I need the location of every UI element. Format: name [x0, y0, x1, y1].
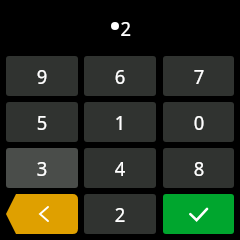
staticText: 1 [114, 109, 125, 136]
button[interactable]: 1 [84, 102, 156, 142]
staticText: 0 [193, 109, 204, 136]
button[interactable]: 6 [84, 56, 156, 96]
button[interactable]: Confirm [163, 194, 234, 234]
staticText: 2 [114, 201, 125, 228]
button[interactable]: 9 [6, 56, 78, 96]
button[interactable]: 0 [163, 102, 234, 142]
button[interactable]: 2 [84, 194, 156, 234]
button[interactable]: 5 [6, 102, 78, 142]
button[interactable]: 4 [84, 148, 156, 188]
staticText: 7 [193, 63, 204, 90]
staticText: 5 [36, 109, 47, 136]
staticText: 4 [114, 155, 125, 182]
staticText: 9 [36, 63, 47, 90]
staticText: 3 [36, 155, 47, 182]
staticText: 8 [193, 155, 204, 182]
button[interactable]: 3 [6, 148, 78, 188]
button[interactable]: Backspace [6, 194, 78, 234]
staticText: 6 [114, 63, 125, 90]
button[interactable]: 7 [163, 56, 234, 96]
staticText: 2 [120, 15, 131, 42]
button[interactable]: 8 [163, 148, 234, 188]
